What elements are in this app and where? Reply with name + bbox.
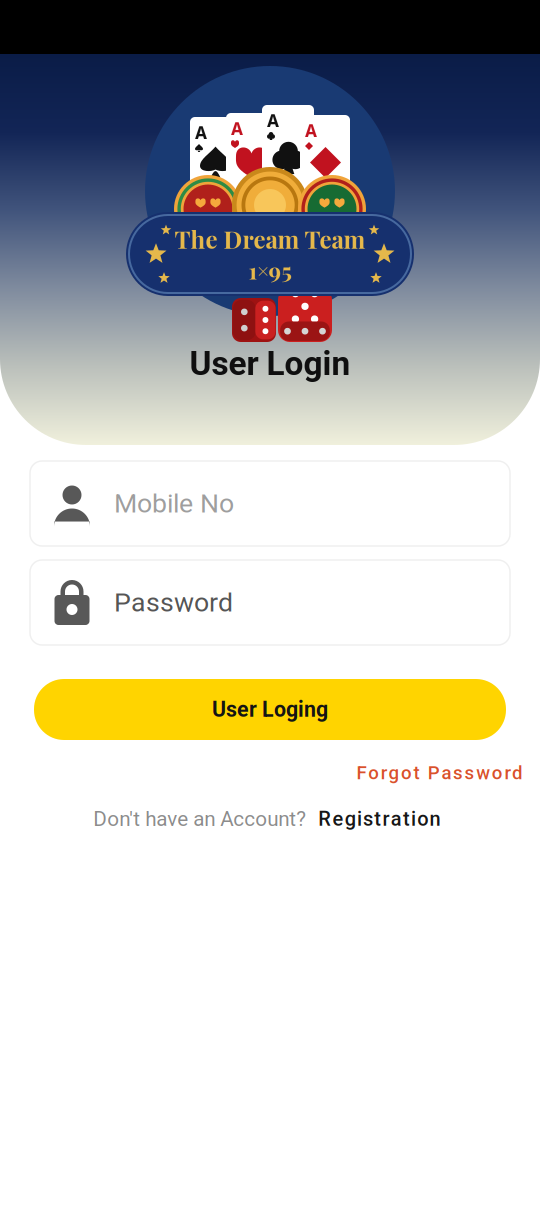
staticText: A [305, 119, 317, 142]
staticText: Mobile No [114, 488, 234, 519]
button[interactable]: Mobile No [30, 461, 510, 546]
staticText: User Login [189, 344, 350, 383]
staticText: User Loging [212, 697, 328, 722]
staticText: A [231, 117, 243, 140]
staticText: Don't have an Account? [93, 807, 306, 831]
staticText: Password [114, 587, 233, 618]
staticText: A [267, 109, 279, 132]
button[interactable]: Registration [318, 807, 447, 831]
staticText: Registration [318, 807, 447, 831]
staticText: 1×95 [248, 255, 291, 285]
button[interactable]: Forgot Password [357, 762, 523, 784]
button[interactable]: Password [30, 560, 510, 645]
staticText: Forgot Password [357, 762, 523, 784]
staticText: A [195, 121, 207, 144]
button[interactable]: User Loging [34, 679, 506, 740]
staticText: The Dream Team [174, 223, 365, 255]
